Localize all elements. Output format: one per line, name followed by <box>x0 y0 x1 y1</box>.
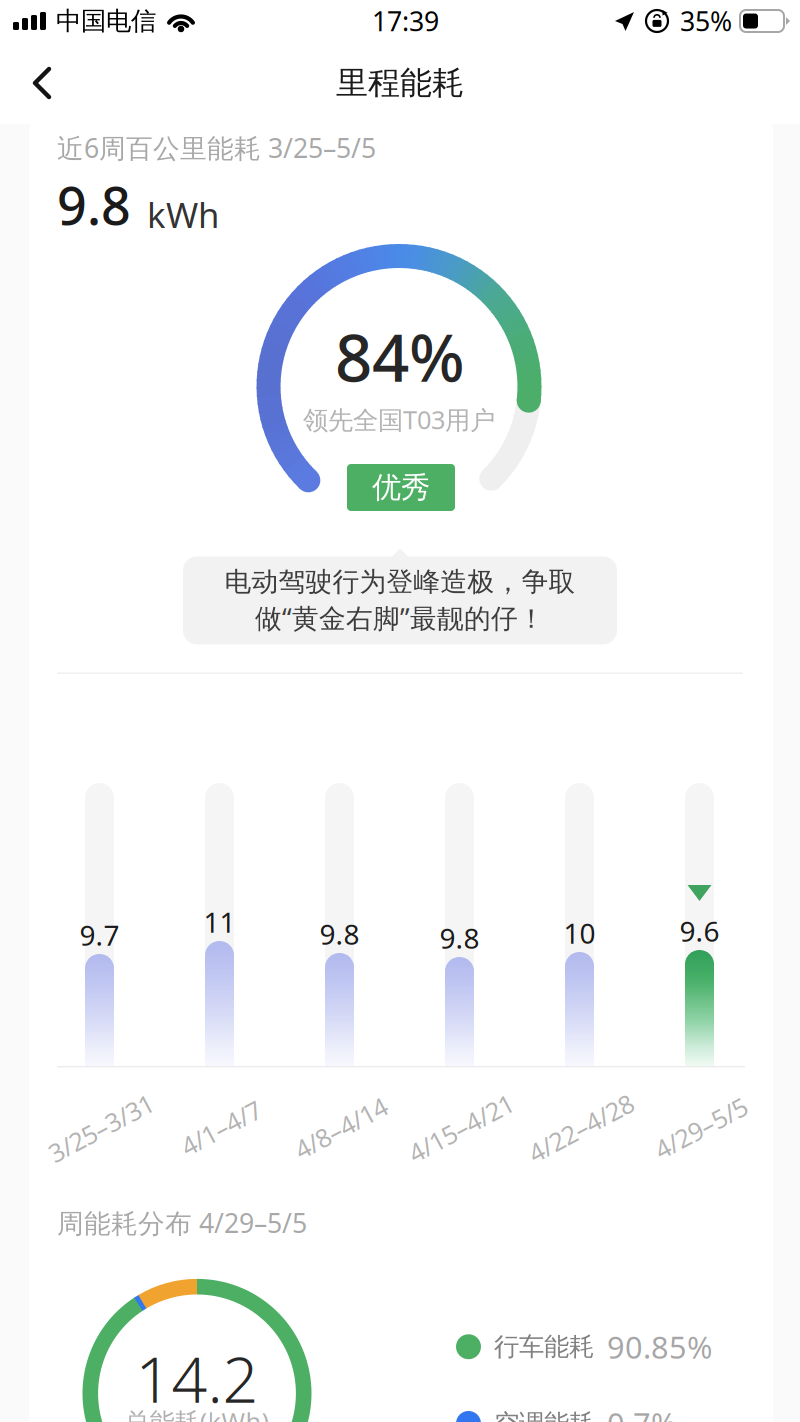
staticText: 9.8 <box>439 919 479 957</box>
staticText: 里程能耗 <box>336 63 464 103</box>
staticText: 行车能耗 <box>494 1331 594 1362</box>
staticText: 中国电信 <box>56 5 156 36</box>
staticText: 4/1–4/7 <box>177 1111 264 1145</box>
staticText: 90.85% <box>607 1326 712 1367</box>
staticText: 9.6 <box>679 912 719 950</box>
button[interactable]: 优秀 <box>347 464 455 511</box>
staticText: 周能耗分布 4/29–5/5 <box>57 1205 307 1240</box>
staticText: 4/22–4/28 <box>523 1111 638 1145</box>
staticText: 优秀 <box>372 469 430 505</box>
staticText: kWh <box>147 191 219 237</box>
staticText: 领先全国T03用户 <box>303 403 495 436</box>
staticText: 3/25–3/31 <box>43 1111 158 1145</box>
staticText: 电动驾驶行为登峰造极，争取 <box>224 565 575 598</box>
staticText: 4/15–4/21 <box>403 1111 518 1145</box>
staticText: 近6周百公里能耗 3/25–5/5 <box>57 130 376 165</box>
staticText: 9.8 <box>57 170 131 239</box>
staticText: 17:39 <box>372 3 439 39</box>
staticText: 14.2 <box>135 1337 258 1420</box>
staticText: 做“黄金右脚”最靓的仔！ <box>255 600 545 635</box>
staticText: 9.8 <box>319 915 359 953</box>
button[interactable]: Back <box>0 44 83 122</box>
staticText: 11 <box>203 903 235 941</box>
staticText: 空调能耗 <box>494 1408 594 1422</box>
staticText: 9.7 <box>79 916 119 954</box>
staticText: 4/8–4/14 <box>290 1111 391 1145</box>
staticText: 0.7% <box>607 1403 676 1422</box>
staticText: 35% <box>680 3 732 39</box>
staticText: 84% <box>335 313 465 400</box>
staticText: 10 <box>563 914 595 952</box>
staticText: 总能耗(kWh) <box>124 1405 269 1422</box>
staticText: 4/29–5/5 <box>650 1111 751 1145</box>
